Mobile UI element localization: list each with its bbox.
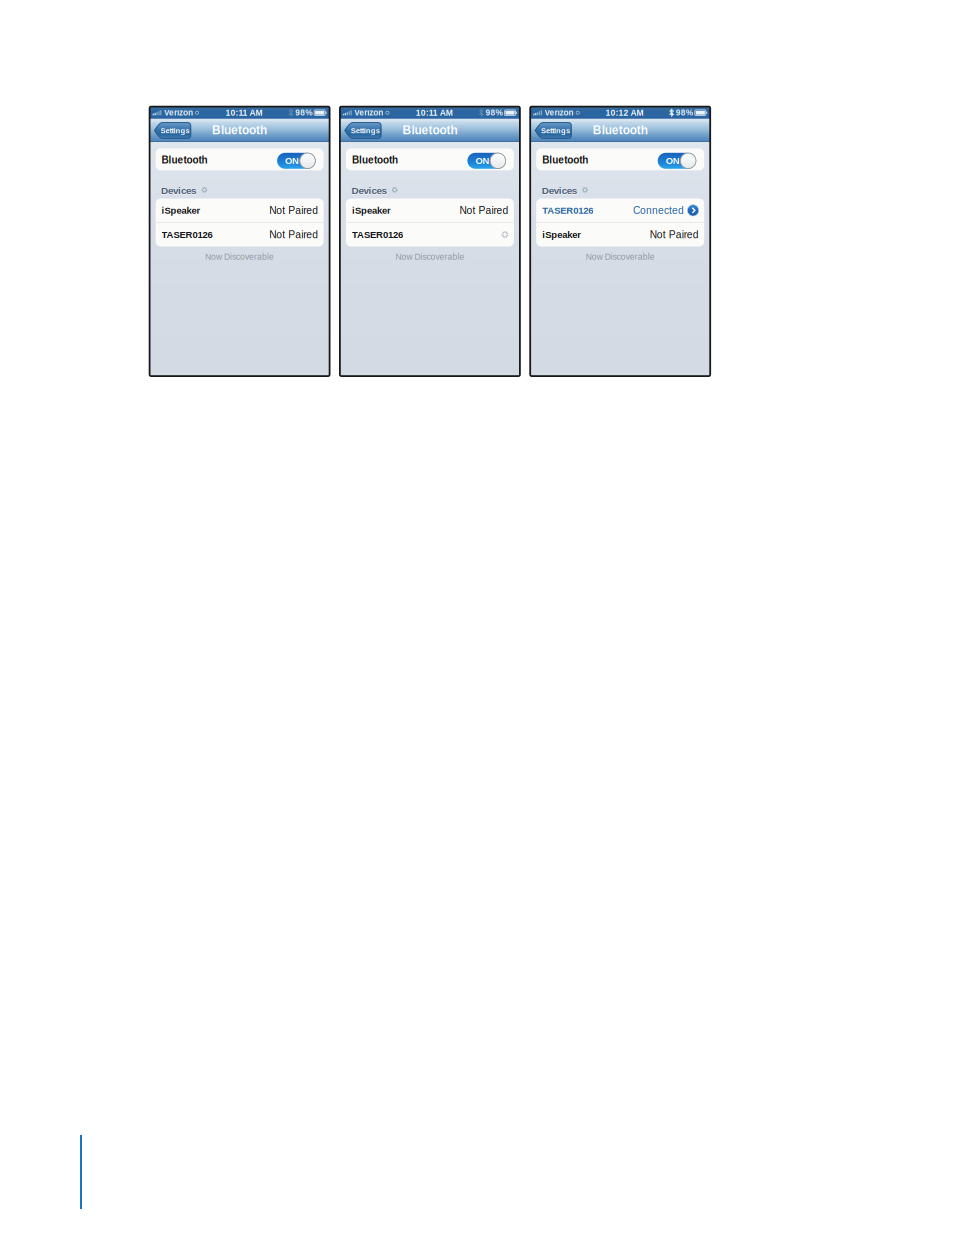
staticText: ON [666,156,680,166]
staticText: ON [475,156,489,166]
staticText: Devices [161,185,196,196]
staticText: Now Discoverable [586,252,655,261]
staticText: Not Paired [650,229,699,240]
staticText: iSpeaker [542,229,581,240]
button[interactable]: iSpeaker [536,223,704,246]
staticText: Settings [160,126,189,135]
staticText: 98% [676,108,693,117]
staticText: Not Paired [269,229,318,240]
staticText: TASER0126 [162,229,213,240]
staticText: ON [285,156,299,166]
staticText: Devices [542,185,577,196]
button[interactable]: Back to Settings [534,122,572,139]
staticText: Bluetooth [352,154,398,166]
staticText: Verizon [164,108,193,117]
staticText: Bluetooth [162,154,208,166]
staticText: iSpeaker [162,205,201,216]
staticText: Devices [351,185,386,196]
staticText: TASER0126 [542,205,593,216]
staticText: Bluetooth [593,124,648,137]
staticText: Not Paired [459,205,508,216]
button[interactable]: TASER0126 [536,198,704,222]
staticText: 10:11 AM [416,108,453,117]
button[interactable]: Back to Settings [344,122,381,139]
button[interactable]: Back to Settings [154,122,191,139]
button[interactable]: iSpeaker [346,198,514,222]
staticText: Verizon [354,108,383,117]
staticText: Devices [351,186,386,197]
button[interactable]: iSpeaker [156,198,324,222]
staticText: Bluetooth [212,124,267,137]
button[interactable]: Bluetooth, On [536,148,704,170]
staticText: Bluetooth [402,124,457,137]
staticText: Settings [541,126,570,135]
button[interactable]: Bluetooth, On [156,148,324,170]
staticText: Not Paired [269,205,318,216]
staticText: Devices [542,186,577,197]
staticText: Devices [161,186,196,197]
staticText: TASER0126 [352,229,403,240]
staticText: Now Discoverable [395,252,464,261]
staticText: 98% [295,108,312,117]
staticText: 10:11 AM [225,108,262,117]
staticText: Connected [633,205,684,216]
staticText: Now Discoverable [205,252,274,261]
staticText: Verizon [544,108,573,117]
staticText: 10:12 AM [606,108,644,117]
button[interactable]: TASER0126 [156,223,324,246]
staticText: Bluetooth [542,154,588,166]
button[interactable]: TASER0126 [346,223,514,246]
staticText: Settings [351,126,380,135]
staticText: 98% [485,108,502,117]
staticText: iSpeaker [352,205,391,216]
button[interactable]: Bluetooth, On [346,148,514,170]
